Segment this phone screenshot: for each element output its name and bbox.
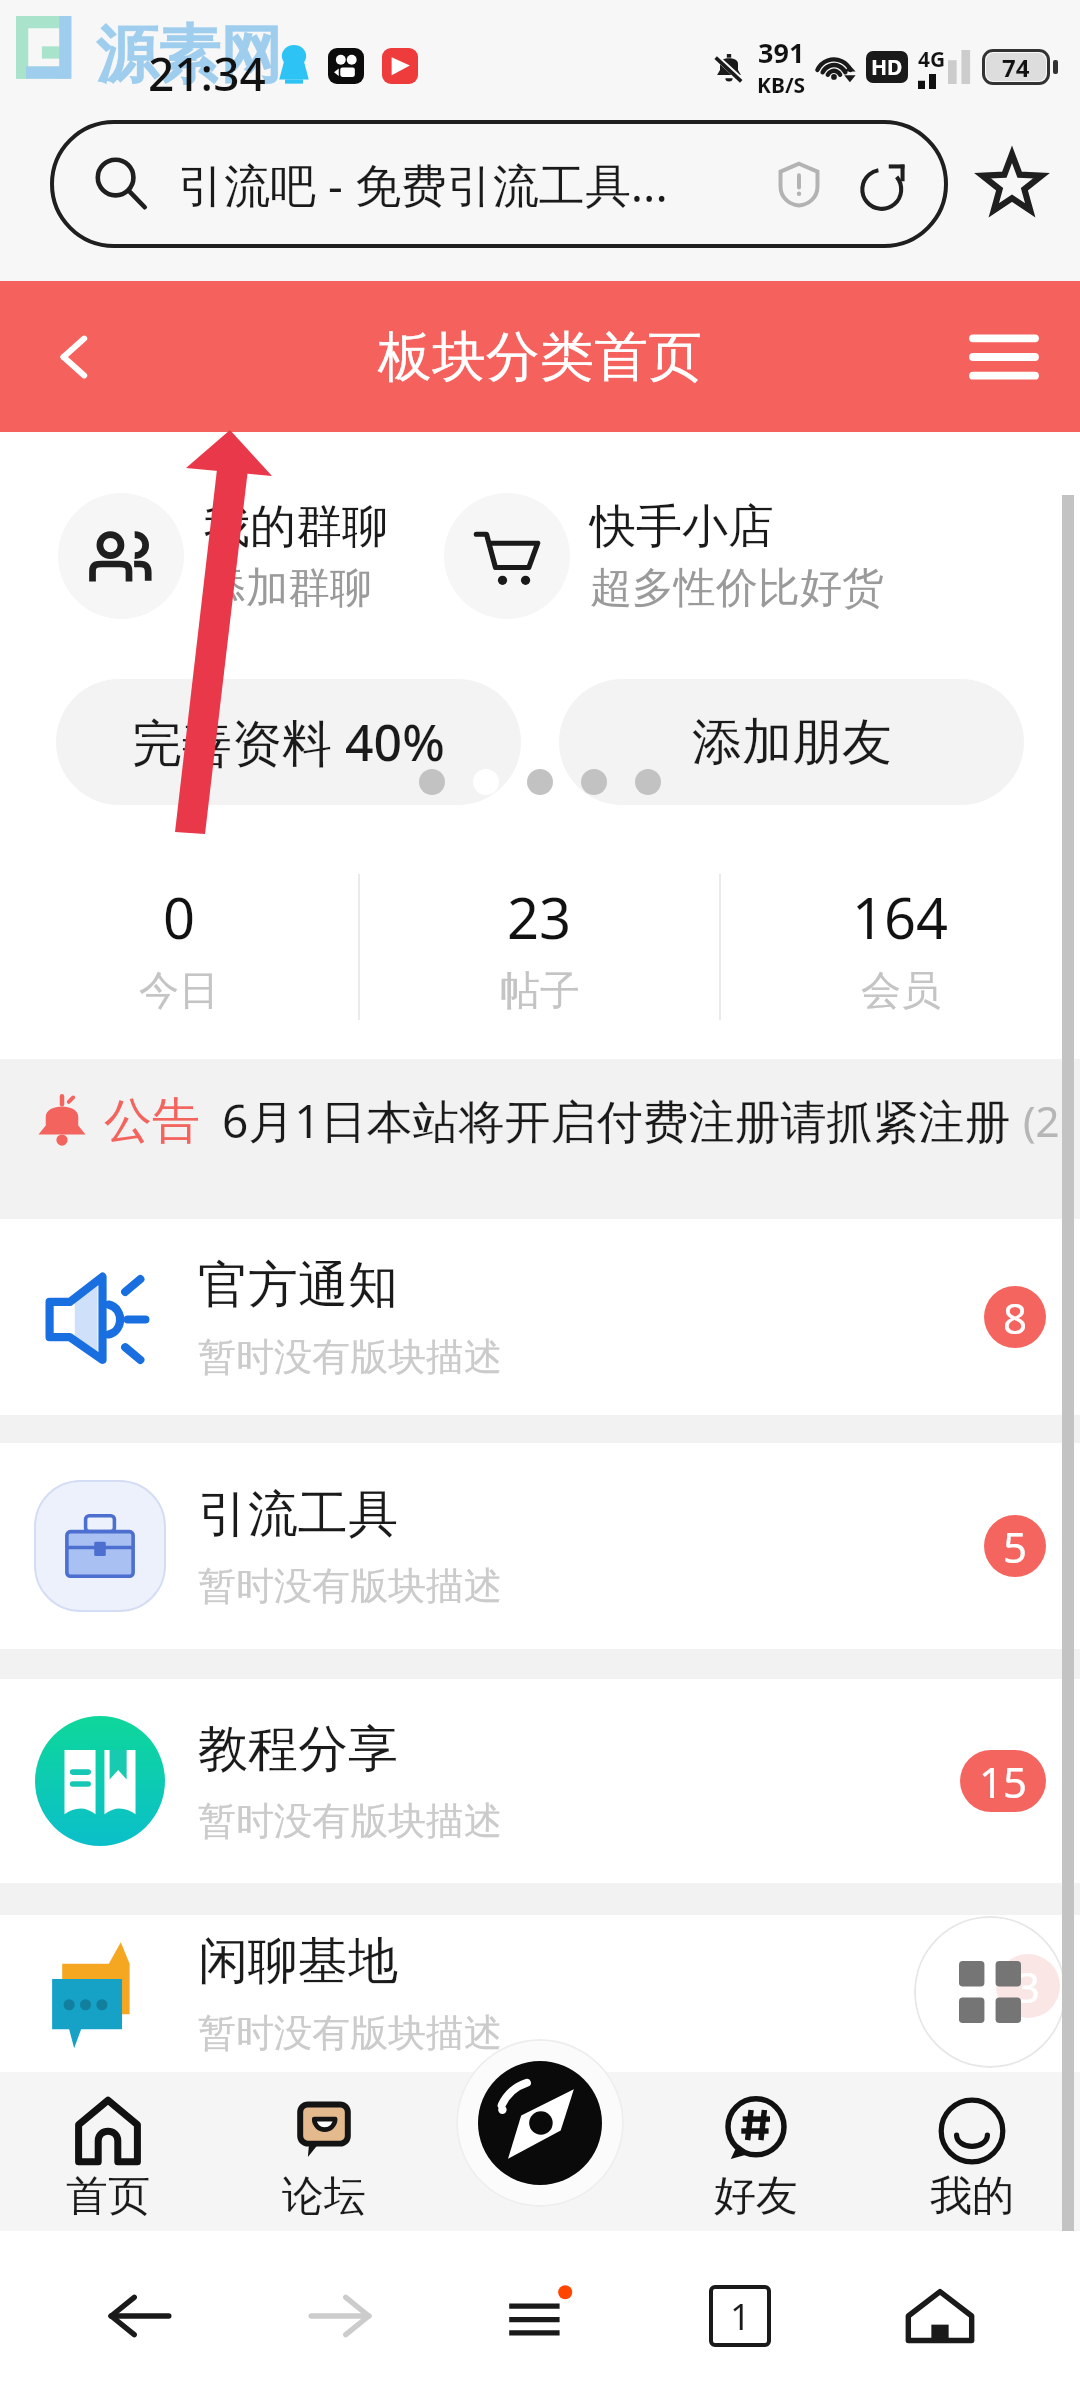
staticText: 帖子 [500,965,580,1015]
button[interactable]: Menu [440,2231,640,2400]
button[interactable]: 好友 [648,2096,864,2231]
button[interactable]: 引流吧 - 免费引流工具... [94,120,914,248]
staticText: 快手小店 [590,498,774,556]
staticText: 引流吧 - 免费引流工具... [178,153,764,216]
staticText: 4G [918,45,946,74]
button[interactable]: 公告 [0,1059,1080,1182]
button[interactable]: Reload [856,155,914,213]
staticText: 论坛 [282,2170,366,2223]
button[interactable]: 论坛 [216,2096,432,2231]
staticText: 添加朋友 [692,711,892,774]
staticText: 5 [1003,1518,1028,1575]
staticText: 板块分类首页 [378,323,702,391]
button[interactable]: 添加朋友 [559,679,1024,805]
staticText: 0 [163,879,196,955]
staticText: 1 [730,2292,751,2341]
button[interactable]: 快手小店 [444,493,1050,619]
button[interactable]: Bookmark [972,144,1052,224]
button[interactable]: 闲聊基地 [34,1915,1046,2072]
staticText: 好友 [714,2170,798,2223]
staticText: 391 [758,34,805,71]
staticText: (2022- [1023,1092,1080,1149]
button[interactable]: 164 [721,879,1080,1015]
button[interactable]: 教程分享 [34,1679,1046,1883]
staticText: KB/S [757,71,806,100]
staticText: 首页 [66,2170,150,2223]
button[interactable]: Back [40,2231,240,2400]
button[interactable]: Site info [774,159,824,209]
button[interactable]: 完善资料 40% [56,679,521,805]
staticText: 官方通知 [198,1254,398,1317]
staticText: 暂时没有版块描述 [198,1562,502,1610]
staticText: 源素网 [96,16,282,94]
button[interactable]: Menu grid [914,1916,1066,2068]
staticText: 23 [507,879,572,955]
button[interactable]: Back [0,281,150,432]
button[interactable]: Forward [240,2231,440,2400]
button[interactable]: 我的 [864,2096,1080,2231]
button[interactable]: Discover [478,2061,602,2185]
staticText: 我的 [930,2170,1014,2223]
button[interactable]: Tabs [640,2231,840,2400]
button[interactable]: 官方通知 [34,1219,1046,1415]
staticText: 6月1日本站将开启付费注册请抓紧注册 [222,1089,1011,1152]
staticText: 74 [1002,51,1030,84]
button[interactable]: Menu [928,281,1080,432]
staticText: 3 [1016,1958,1041,2015]
staticText: HD [871,53,903,82]
button[interactable]: 我的群聊 [58,493,442,619]
staticText: 暂时没有版块描述 [198,2009,502,2057]
button[interactable]: Home [840,2231,1040,2400]
staticText: 暂时没有版块描述 [198,1333,502,1381]
staticText: 超多性价比好货 [590,562,884,615]
button[interactable]: 0 [0,879,358,1015]
button[interactable]: 23 [360,879,719,1015]
staticText: 引流工具 [198,1483,398,1546]
staticText: 会员 [861,965,941,1015]
staticText: 暂时没有版块描述 [198,1797,502,1845]
staticText: 15 [979,1753,1028,1810]
button[interactable]: 首页 [0,2096,216,2231]
staticText: 教程分享 [198,1718,398,1781]
staticText: 闲聊基地 [198,1930,398,1993]
button[interactable]: 引流工具 [34,1443,1046,1649]
staticText: 8 [1003,1289,1028,1346]
staticText: 我的群聊 [204,498,388,556]
staticText: 21:34 [148,42,266,105]
staticText: 添加群聊 [204,562,372,615]
staticText: 164 [852,879,949,955]
staticText: 公告 [104,1091,200,1151]
staticText: 今日 [139,965,219,1015]
staticText: 完善资料 40% [132,708,445,776]
